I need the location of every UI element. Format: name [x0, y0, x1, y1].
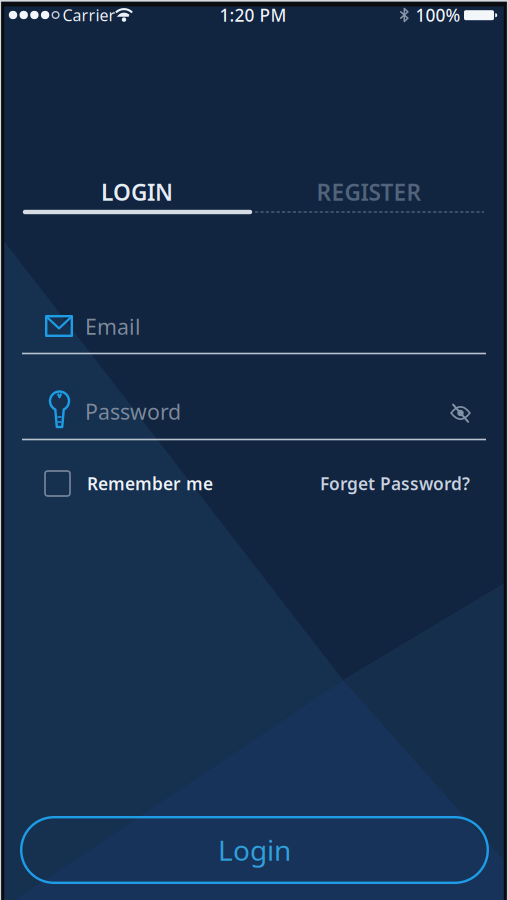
- staticText: Carrier: [62, 4, 115, 26]
- staticText: Login: [218, 831, 291, 869]
- button[interactable]: Login: [20, 816, 489, 884]
- staticText: 1:20 PM: [219, 3, 286, 26]
- button[interactable]: LOGIN: [24, 172, 250, 212]
- staticText: Email: [85, 312, 141, 341]
- button[interactable]: Remember me: [44, 466, 249, 500]
- staticText: Password: [85, 397, 181, 426]
- button[interactable]: Forget Password?: [310, 466, 470, 500]
- staticText: LOGIN: [101, 177, 173, 207]
- staticText: Remember me: [87, 472, 213, 495]
- button[interactable]: REGISTER: [256, 172, 482, 212]
- button[interactable]: Show password: [449, 402, 471, 424]
- staticText: 100%: [415, 3, 460, 26]
- staticText: Forget Password?: [320, 472, 470, 495]
- staticText: REGISTER: [316, 177, 421, 207]
